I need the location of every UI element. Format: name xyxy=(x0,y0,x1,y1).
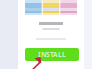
button[interactable]: INSTALL xyxy=(25,48,79,61)
staticText: INSTALL xyxy=(38,50,66,59)
